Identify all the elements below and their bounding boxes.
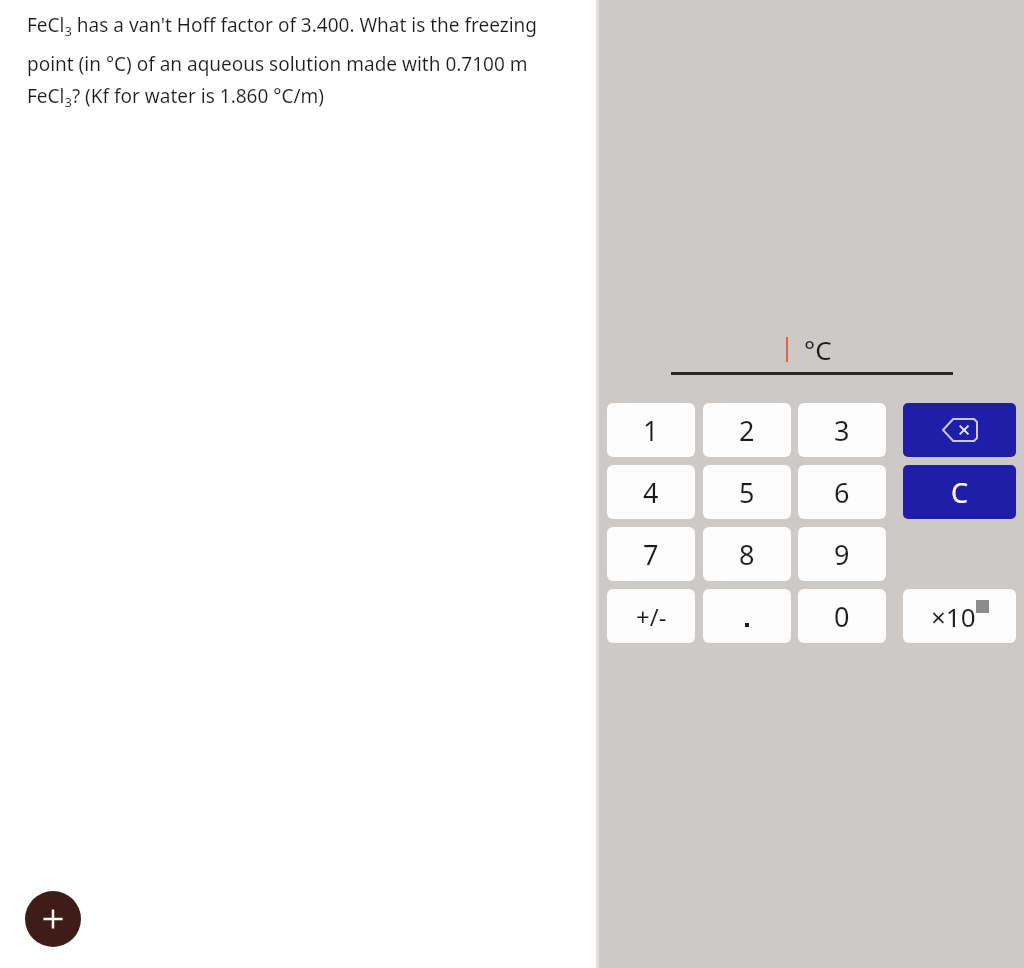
staticText: ×10 [931,599,976,634]
staticText: 2 [739,412,755,449]
button[interactable]: Add [25,891,81,947]
staticText: 6 [834,474,850,511]
button[interactable]: 0 [798,589,886,643]
button[interactable]: 9 [798,527,886,581]
button[interactable]: ×10 [903,589,1016,643]
staticText: 9 [834,536,850,573]
button[interactable]: 7 [607,527,695,581]
button[interactable]: 1 [607,403,695,457]
staticText: 7 [643,536,659,573]
button[interactable] [703,589,791,643]
button[interactable]: 5 [703,465,791,519]
staticText: 4 [643,474,659,511]
button[interactable]: C [903,465,1016,519]
staticText: 0 [834,598,850,635]
button[interactable]: 4 [607,465,695,519]
staticText: 5 [739,474,755,511]
staticText: +/- [636,600,667,633]
staticText: 8 [739,536,755,573]
button[interactable]: +/- [607,589,695,643]
button[interactable]: Backspace [903,403,1016,457]
staticText: °C [804,332,832,367]
staticText: FeCl3 has a van't Hoff factor of 3.400. … [27,12,572,110]
button[interactable]: 2 [703,403,791,457]
button[interactable]: 3 [798,403,886,457]
staticText: C [951,474,969,511]
button[interactable]: 8 [703,527,791,581]
button[interactable]: 6 [798,465,886,519]
staticText: 1 [643,412,659,449]
staticText: 3 [834,412,850,449]
